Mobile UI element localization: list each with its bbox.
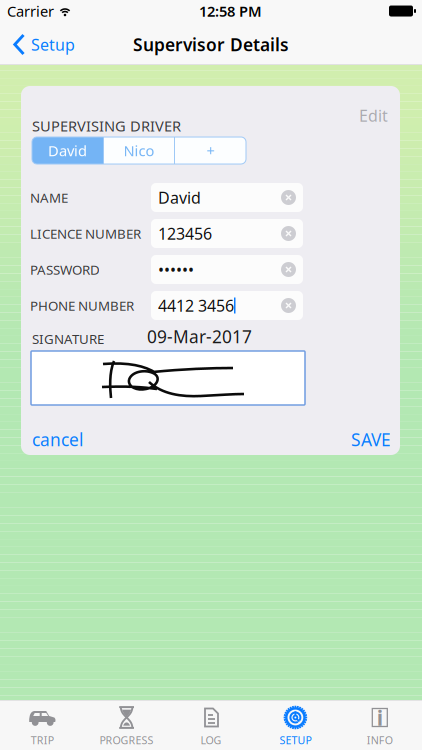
staticText: 12:58 PM	[199, 1, 262, 21]
button[interactable]: SAVE	[345, 422, 397, 457]
staticText: LICENCE NUMBER	[30, 225, 141, 242]
button[interactable]: Clear LICENCE NUMBER	[281, 226, 296, 241]
button[interactable]: Clear NAME	[281, 190, 296, 205]
button[interactable]: Nico	[104, 137, 174, 164]
button[interactable]: SETUP	[253, 700, 338, 750]
staticText: 123456	[158, 223, 212, 244]
staticText: ••••••	[158, 259, 194, 280]
button[interactable]: Add driver	[175, 137, 246, 164]
button[interactable]: i	[338, 700, 422, 750]
staticText: David	[158, 187, 201, 208]
staticText: i	[377, 703, 383, 732]
staticText: PROGRESS	[100, 733, 154, 747]
staticText: Setup	[31, 34, 75, 55]
button[interactable]: LOG	[169, 700, 253, 750]
button[interactable]: PROGRESS	[84, 700, 169, 750]
staticText: David	[48, 141, 87, 160]
staticText: PHONE NUMBER	[30, 297, 134, 314]
button[interactable]: Clear PASSWORD	[281, 262, 296, 277]
staticText: PASSWORD	[30, 261, 100, 278]
staticText: TRIP	[31, 733, 54, 747]
staticText: SIGNATURE	[32, 330, 104, 348]
button[interactable]: David	[32, 137, 103, 164]
button[interactable]: cancel	[26, 422, 89, 457]
staticText: SUPERVISING DRIVER	[32, 116, 181, 135]
staticText: 4412 3456	[158, 295, 234, 316]
button[interactable]: Setup	[0, 24, 83, 64]
staticText: INFO	[367, 733, 393, 747]
staticText: +	[206, 141, 214, 160]
staticText: Supervisor Details	[133, 33, 289, 56]
staticText: 09-Mar-2017	[147, 325, 252, 348]
staticText: LOG	[200, 733, 221, 747]
staticText: Nico	[123, 141, 154, 160]
button[interactable]: TRIP	[0, 700, 84, 750]
staticText: Edit	[359, 105, 388, 126]
staticText: NAME	[30, 189, 68, 206]
staticText: SETUP	[279, 733, 311, 747]
button[interactable]: Edit	[353, 99, 394, 132]
staticText: Carrier	[7, 1, 54, 21]
button[interactable]: Clear PHONE NUMBER	[281, 298, 296, 313]
staticText: cancel	[32, 428, 83, 451]
staticText: SAVE	[351, 428, 391, 451]
